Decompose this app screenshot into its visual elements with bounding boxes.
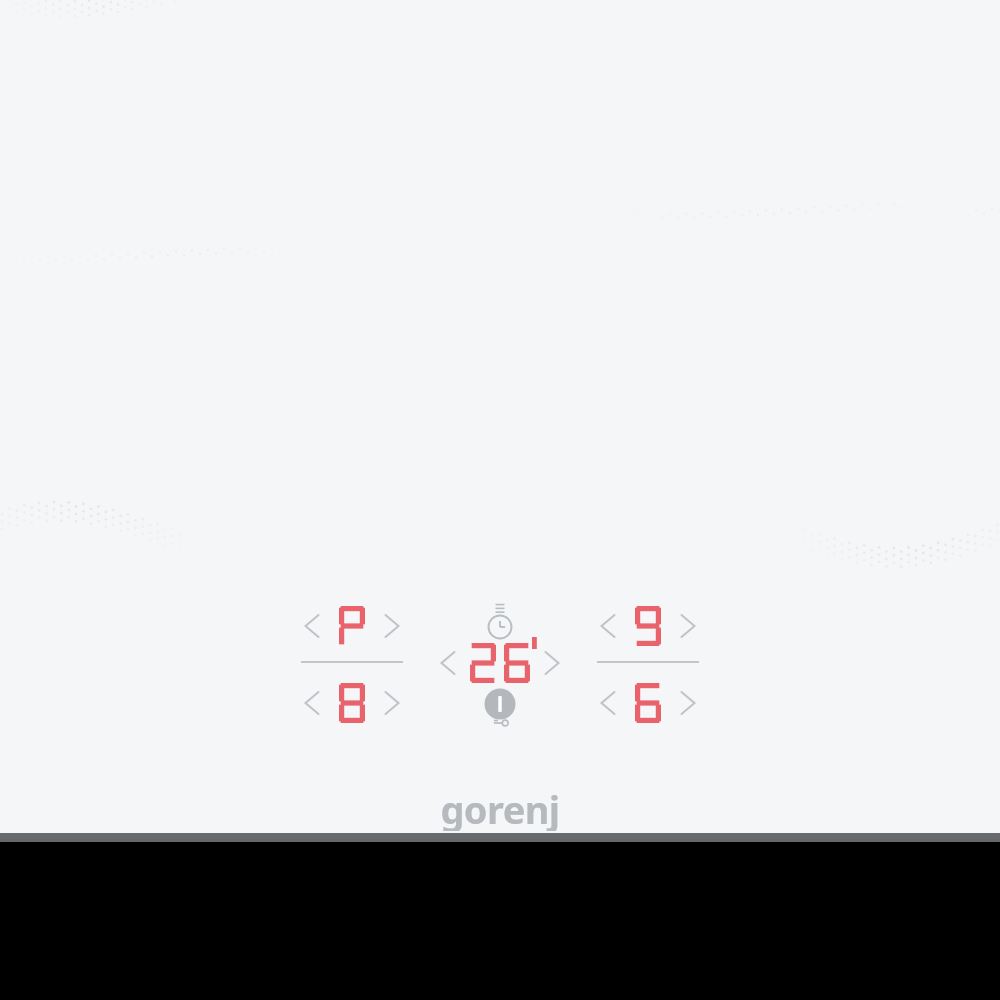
button[interactable]: Timer value 26 minutes (434, 643, 566, 685)
staticText: gorenje (430, 783, 570, 831)
button[interactable]: Right rear heat level (584, 604, 700, 650)
button[interactable]: Timer (482, 608, 518, 644)
button[interactable]: Power on off (482, 686, 518, 724)
button[interactable]: Child lock (484, 714, 516, 732)
button[interactable]: Decrease left rear heat level (288, 604, 404, 650)
button[interactable]: Right front heat level (584, 681, 700, 727)
button[interactable]: Increase left rear heat level (288, 681, 404, 727)
